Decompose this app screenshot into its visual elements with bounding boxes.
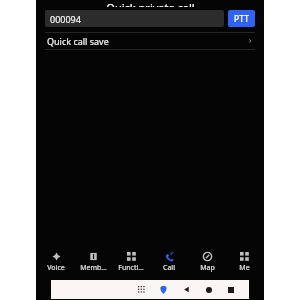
staticText: Memb… bbox=[80, 263, 107, 273]
button[interactable]: All apps bbox=[135, 283, 148, 296]
button[interactable]: Voice bbox=[38, 251, 74, 274]
button[interactable]: Map bbox=[189, 251, 225, 274]
button[interactable]: Assistant bbox=[157, 283, 170, 296]
button[interactable]: Home bbox=[202, 283, 215, 296]
button[interactable]: Call bbox=[151, 251, 187, 274]
button[interactable]: Memb… bbox=[75, 251, 111, 274]
button[interactable]: Functi… bbox=[113, 251, 149, 274]
staticText: 000094 bbox=[50, 13, 81, 25]
button[interactable]: Me bbox=[226, 251, 262, 274]
button[interactable]: PTT bbox=[228, 10, 255, 27]
staticText: Functi… bbox=[118, 263, 144, 273]
staticText: Quick private call bbox=[106, 0, 195, 7]
button[interactable]: Back bbox=[180, 283, 193, 296]
button[interactable]: Quick call save bbox=[36, 33, 264, 49]
staticText: Call bbox=[163, 263, 175, 273]
staticText: Quick call save bbox=[47, 35, 109, 47]
button[interactable]: Recent apps bbox=[224, 283, 237, 296]
staticText: Voice bbox=[47, 263, 65, 273]
staticText: Me bbox=[239, 263, 250, 273]
staticText: Map bbox=[200, 263, 215, 273]
button[interactable]: 000094 bbox=[45, 10, 224, 27]
staticText: PTT bbox=[234, 13, 249, 25]
